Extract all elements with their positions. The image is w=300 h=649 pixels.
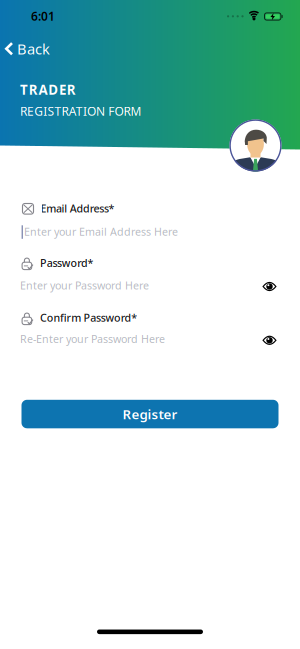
button[interactable]: Register bbox=[21, 400, 278, 428]
button[interactable] bbox=[262, 282, 276, 291]
staticText: Enter your Password Here bbox=[20, 278, 149, 293]
button[interactable] bbox=[262, 336, 276, 345]
staticText: Confirm Password* bbox=[40, 311, 137, 325]
button[interactable]: Back bbox=[5, 39, 50, 58]
staticText: REGISTRATION FORM bbox=[20, 103, 142, 119]
staticText: Password* bbox=[40, 256, 94, 270]
staticText: 6:01 bbox=[31, 8, 55, 24]
staticText: Enter your Email Address Here bbox=[24, 225, 178, 239]
staticText: Register bbox=[122, 405, 177, 423]
staticText: Email Address* bbox=[40, 201, 115, 215]
staticText: Re-Enter your Password Here bbox=[20, 332, 165, 346]
staticText: TRADER bbox=[20, 81, 76, 98]
staticText: Back bbox=[17, 39, 50, 58]
